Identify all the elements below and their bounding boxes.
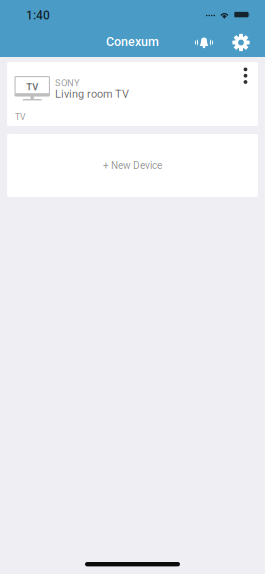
staticText: 1:40 bbox=[26, 8, 50, 22]
staticText: TV bbox=[15, 112, 26, 122]
staticText: Conexum bbox=[106, 34, 159, 49]
staticText: TV bbox=[26, 81, 38, 92]
button[interactable]: Settings bbox=[227, 28, 255, 57]
button[interactable]: + New Device bbox=[7, 134, 258, 197]
staticText: SONY bbox=[55, 77, 80, 88]
staticText: + New Device bbox=[103, 160, 162, 171]
staticText: Living room TV bbox=[55, 88, 129, 100]
button[interactable]: Device options bbox=[234, 67, 256, 97]
button[interactable]: Notifications bbox=[189, 28, 219, 57]
